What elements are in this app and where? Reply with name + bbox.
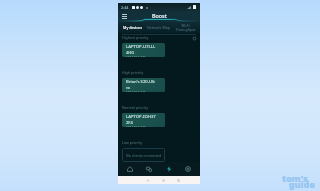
staticText: Low priority [122, 140, 143, 145]
staticText: guide [289, 178, 316, 190]
staticText: tom's [282, 172, 308, 184]
button[interactable]: No clients connected [122, 148, 165, 162]
button[interactable]: Devices [141, 162, 157, 176]
staticText: LAPTOP-U7LLL [126, 44, 156, 50]
button[interactable]: LAPTOP-U7LLL [122, 43, 165, 57]
staticText: Brian's S20-Ult [126, 79, 155, 85]
button[interactable]: Home [122, 162, 138, 176]
staticText: Boost [152, 12, 167, 19]
button[interactable]: Boost [161, 162, 177, 176]
staticText: Highest priority [122, 35, 149, 40]
staticText: Network Map [147, 25, 170, 30]
staticText: Normal priority [122, 105, 148, 110]
button[interactable]: LAPTOP-IOH37 [122, 113, 165, 127]
staticText: 2:44 [121, 5, 129, 10]
button[interactable]: Network Map [145, 25, 172, 30]
button[interactable]: Wi-Fi Throughput [172, 23, 198, 32]
staticText: ra [126, 85, 130, 90]
button[interactable]: Menu [122, 14, 127, 19]
button[interactable]: Info [192, 36, 196, 40]
button[interactable]: My devices [120, 25, 145, 30]
staticText: 192.168.1.111 [126, 91, 146, 92]
button[interactable]: Settings [180, 162, 196, 176]
staticText: 192.168.1.104 [126, 56, 146, 57]
staticText: LAPTOP-IOH37 [126, 114, 156, 120]
staticText: Wi-Fi Throughput [175, 23, 196, 32]
staticText: My devices [123, 25, 142, 30]
staticText: 2F4 [126, 120, 133, 125]
staticText: High priority [122, 70, 144, 75]
staticText: 192.168.1.120 [126, 126, 146, 127]
staticText: 4HG [126, 50, 135, 55]
button[interactable]: Brian's S20-Ult [122, 78, 165, 92]
staticText: No clients connected [126, 153, 162, 158]
